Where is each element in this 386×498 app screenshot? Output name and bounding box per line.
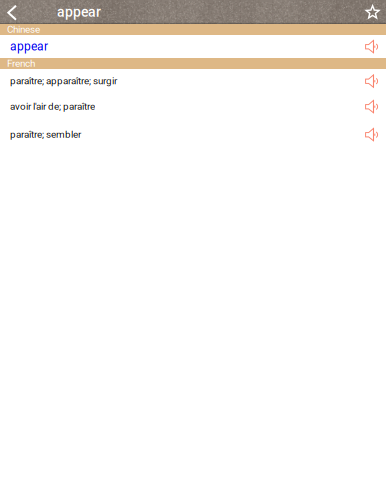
- button[interactable]: paraître; apparaître; surgir: [0, 69, 386, 93]
- button[interactable]: avoir l'air de; paraître: [0, 93, 386, 120]
- staticText: appear: [57, 4, 101, 20]
- staticText: Chinese: [7, 24, 40, 35]
- button[interactable]: Back: [0, 0, 27, 24]
- staticText: paraître; apparaître; surgir: [10, 75, 117, 87]
- staticText: French: [7, 58, 35, 69]
- staticText: appear: [10, 39, 48, 54]
- staticText: paraître; sembler: [10, 129, 81, 140]
- staticText: avoir l'air de; paraître: [10, 101, 95, 112]
- button[interactable]: paraître; sembler: [0, 120, 386, 149]
- button[interactable]: appear: [0, 35, 386, 58]
- button[interactable]: Add to favourites: [357, 0, 386, 24]
